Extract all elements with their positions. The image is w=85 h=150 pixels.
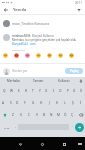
- button[interactable]: E: [15, 85, 22, 97]
- staticText: L: [64, 101, 66, 105]
- button[interactable]: Ü: [78, 85, 85, 97]
- staticText: Ş: [72, 101, 74, 105]
- button[interactable]: ,: [12, 121, 18, 133]
- button[interactable]: Ö: [62, 109, 69, 121]
- staticText: N: [50, 113, 53, 117]
- button[interactable]: ?123: [1, 121, 12, 133]
- staticText: Ö: [64, 113, 67, 117]
- button[interactable]: H: [37, 97, 45, 109]
- staticText: Z: [12, 113, 14, 117]
- staticText: K: [56, 101, 58, 105]
- button[interactable]: Emoji: [33, 52, 44, 59]
- staticText: Ç: [71, 113, 74, 117]
- button[interactable]: Y: [36, 85, 43, 97]
- button[interactable]: Back: [15, 139, 25, 149]
- staticText: ?123: [4, 126, 10, 129]
- button[interactable]: Backspace: [76, 109, 85, 121]
- button[interactable]: N: [48, 109, 55, 121]
- staticText: 20:11: [75, 1, 83, 5]
- staticText: Kullanıcı: [58, 79, 70, 83]
- button[interactable]: D: [14, 97, 21, 109]
- staticText: Merhaba, bu içeriğiniz gerçekten çok fay…: [12, 38, 77, 42]
- staticText: C: [28, 113, 31, 117]
- staticText: T: [32, 89, 34, 93]
- button[interactable]: V: [33, 109, 41, 121]
- button[interactable]: Tamam: [26, 77, 51, 85]
- staticText: S: [10, 101, 12, 105]
- staticText: Yanıtla: [13, 7, 27, 13]
- button[interactable]: Kullanıcı: [51, 77, 76, 85]
- button[interactable]: More options: [75, 6, 83, 14]
- button[interactable]: B: [41, 109, 48, 121]
- staticText: Paylaş: [70, 69, 79, 73]
- staticText: E: [18, 89, 20, 93]
- button[interactable]: G: [29, 97, 37, 109]
- staticText: Ü: [80, 89, 83, 93]
- staticText: R: [25, 89, 27, 93]
- staticText: Yanıtını yaz: [12, 69, 28, 73]
- staticText: P: [67, 89, 69, 93]
- button[interactable]: Voice input: [76, 77, 85, 85]
- button[interactable]: T: [29, 85, 36, 97]
- button[interactable]: I: [50, 85, 57, 97]
- button[interactable]: K: [53, 97, 61, 109]
- button[interactable]: Emoji: [66, 52, 77, 59]
- staticText: Y: [39, 89, 41, 93]
- button[interactable]: J: [45, 97, 53, 109]
- button[interactable]: Send: [75, 123, 84, 132]
- button[interactable]: W: [8, 85, 15, 97]
- staticText: BünyadKul2 .com: [12, 42, 36, 46]
- staticText: X: [20, 113, 22, 117]
- button[interactable]: Paylaş: [65, 68, 83, 74]
- staticText: B: [43, 113, 46, 117]
- staticText: midmax5656: [12, 34, 31, 38]
- button[interactable]: A: [0, 97, 7, 109]
- staticText: J: [49, 101, 50, 105]
- staticText: D: [16, 101, 19, 105]
- button[interactable]: Q: [0, 85, 8, 97]
- button[interactable]: Ğ: [71, 85, 78, 97]
- staticText: F: [24, 101, 26, 105]
- button[interactable]: Home: [37, 139, 47, 149]
- button[interactable]: Emoji: [11, 52, 22, 59]
- button[interactable]: P: [64, 85, 71, 97]
- button[interactable]: U: [43, 85, 50, 97]
- staticText: H: [40, 101, 43, 105]
- button[interactable]: Switch keyboard: [76, 140, 84, 148]
- button[interactable]: Emoji: [0, 52, 11, 59]
- button[interactable]: maxx_Timeline Konusuna: [3, 20, 82, 27]
- button[interactable]: S: [7, 97, 14, 109]
- staticText: Paylaşılıyor: [12, 48, 26, 51]
- button[interactable]: M: [55, 109, 62, 121]
- staticText: O: [59, 89, 62, 93]
- button[interactable]: R: [22, 85, 29, 97]
- staticText: W: [10, 89, 13, 93]
- staticText: V: [36, 113, 38, 117]
- staticText: G: [32, 101, 35, 105]
- staticText: İ: [80, 101, 82, 105]
- button[interactable]: Merhaba: [0, 77, 26, 85]
- button[interactable]: Z: [9, 109, 17, 121]
- staticText: ,: [15, 124, 16, 128]
- button[interactable]: L: [61, 97, 69, 109]
- staticText: M: [57, 113, 60, 117]
- button[interactable]: Ş: [69, 97, 77, 109]
- button[interactable]: Shift: [0, 109, 9, 121]
- button[interactable]: X: [17, 109, 25, 121]
- button[interactable]: Recent apps: [59, 139, 69, 149]
- staticText: .: [72, 124, 73, 128]
- button[interactable]: Emoji: [22, 52, 33, 59]
- button[interactable]: F: [21, 97, 29, 109]
- button[interactable]: O: [57, 85, 64, 97]
- button[interactable]: Back: [2, 6, 10, 14]
- button[interactable]: Emoji: [55, 52, 66, 59]
- button[interactable]: İ: [77, 97, 85, 109]
- button[interactable]: Emoji: [44, 52, 55, 59]
- staticText: Merhaba: [7, 79, 20, 83]
- button[interactable]: Ç: [69, 109, 76, 121]
- staticText: maxx_Timeline Konusuna: [12, 22, 50, 26]
- button[interactable]: C: [25, 109, 33, 121]
- staticText: I: [53, 89, 55, 93]
